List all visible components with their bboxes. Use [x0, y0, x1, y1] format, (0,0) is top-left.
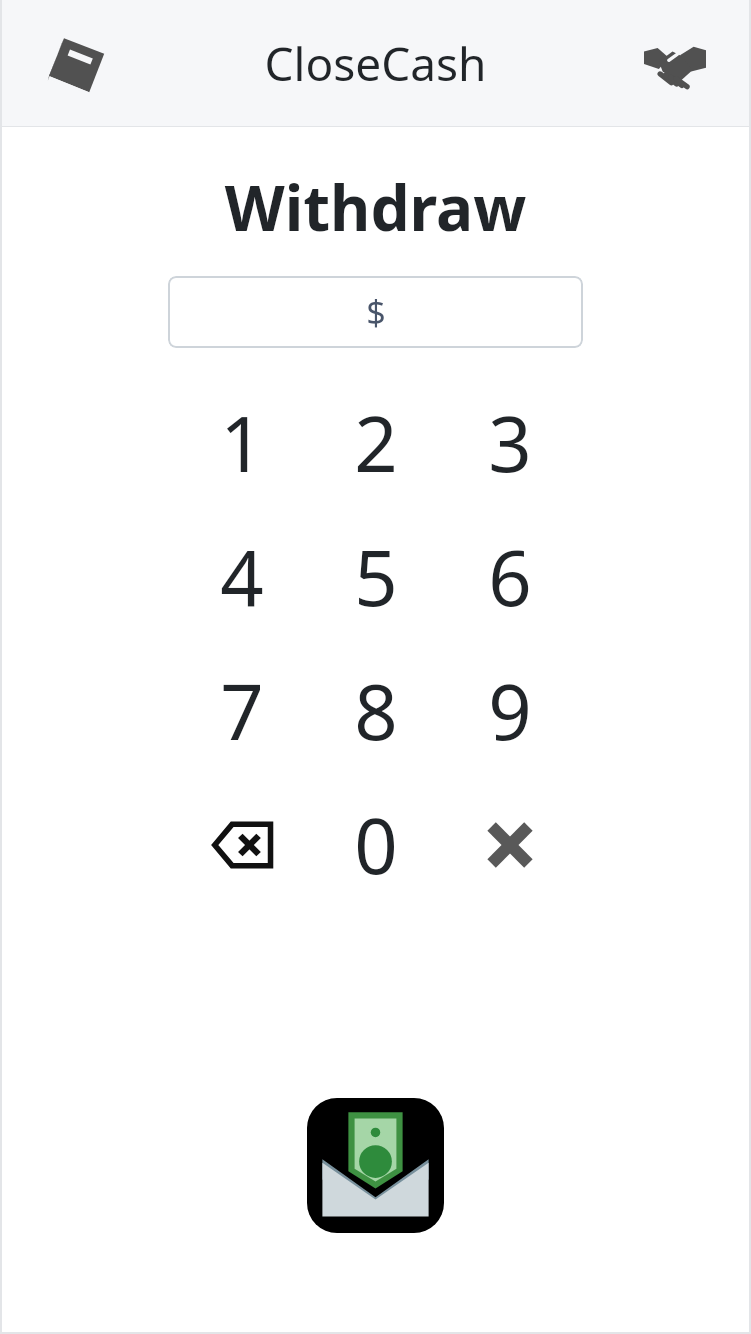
button[interactable]: Ledger — [40, 28, 112, 100]
staticText: 4 — [220, 525, 264, 629]
staticText: 0 — [354, 793, 398, 897]
button[interactable]: 0 — [309, 778, 443, 912]
button[interactable]: Clear — [443, 778, 577, 912]
staticText: Withdraw — [0, 165, 751, 249]
staticText: 8 — [354, 659, 398, 763]
button[interactable]: CloseCash app icon — [307, 1098, 444, 1233]
button[interactable]: Transfer — [639, 28, 711, 100]
button[interactable]: 5 — [309, 510, 443, 644]
button[interactable]: 2 — [309, 376, 443, 510]
staticText: 1 — [220, 391, 264, 495]
staticText: 2 — [354, 391, 398, 495]
staticText: 6 — [488, 525, 532, 629]
button[interactable]: $ — [168, 276, 583, 348]
button[interactable]: 1 — [175, 376, 309, 510]
staticText: 7 — [220, 659, 264, 763]
staticText: CloseCash — [264, 32, 487, 95]
button[interactable]: 8 — [309, 644, 443, 778]
staticText: 5 — [354, 525, 398, 629]
button[interactable]: 4 — [175, 510, 309, 644]
staticText: $ — [366, 289, 386, 335]
button[interactable]: Backspace — [175, 778, 309, 912]
staticText: 3 — [488, 391, 532, 495]
staticText: 9 — [488, 659, 532, 763]
button[interactable]: 3 — [443, 376, 577, 510]
button[interactable]: 6 — [443, 510, 577, 644]
button[interactable]: 7 — [175, 644, 309, 778]
button[interactable]: 9 — [443, 644, 577, 778]
